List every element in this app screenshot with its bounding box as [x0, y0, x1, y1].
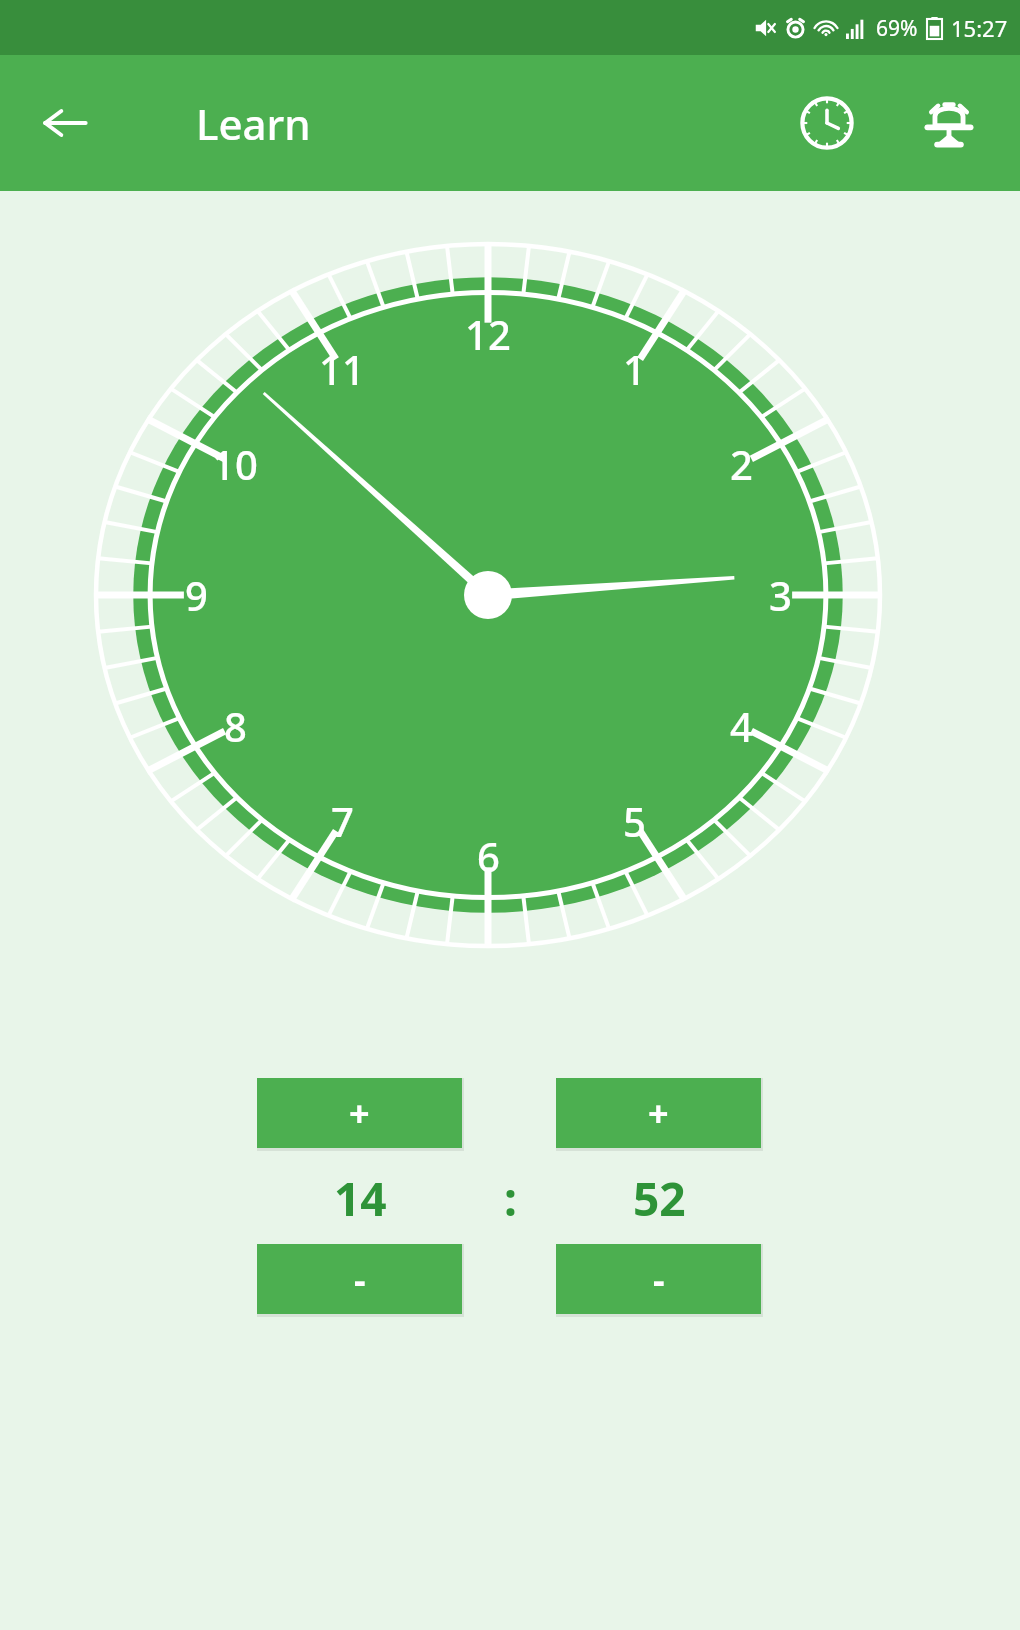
staticText: 2 — [730, 437, 753, 491]
staticText: 69% — [876, 14, 918, 43]
staticText: 9 — [185, 568, 208, 622]
button[interactable]: Increase hours — [257, 1078, 462, 1148]
staticText: 3 — [769, 568, 792, 622]
staticText: 14 — [334, 1167, 387, 1230]
button[interactable]: Alarm — [914, 88, 984, 158]
staticText: - — [653, 1255, 665, 1304]
staticText: 11 — [319, 342, 365, 396]
staticText: 5 — [623, 794, 646, 848]
button[interactable]: Clock — [792, 88, 862, 158]
staticText: 4 — [730, 699, 753, 753]
staticText: 7 — [331, 794, 354, 848]
staticText: 6 — [477, 829, 500, 883]
button[interactable]: Decrease hours — [257, 1244, 462, 1314]
staticText: 15:27 — [951, 13, 1008, 43]
staticText: : — [504, 1167, 517, 1230]
button[interactable]: Increase minutes — [556, 1078, 761, 1148]
staticText: 8 — [224, 699, 247, 753]
staticText: Learn — [196, 95, 311, 152]
staticText: 52 — [633, 1167, 686, 1230]
staticText: + — [349, 1089, 370, 1138]
button[interactable]: Back — [34, 92, 96, 154]
button[interactable]: Decrease minutes — [556, 1244, 761, 1314]
staticText: - — [354, 1255, 366, 1304]
staticText: 12 — [465, 307, 511, 361]
staticText: 1 — [623, 342, 646, 396]
staticText: + — [648, 1089, 669, 1138]
staticText: 10 — [212, 437, 258, 491]
